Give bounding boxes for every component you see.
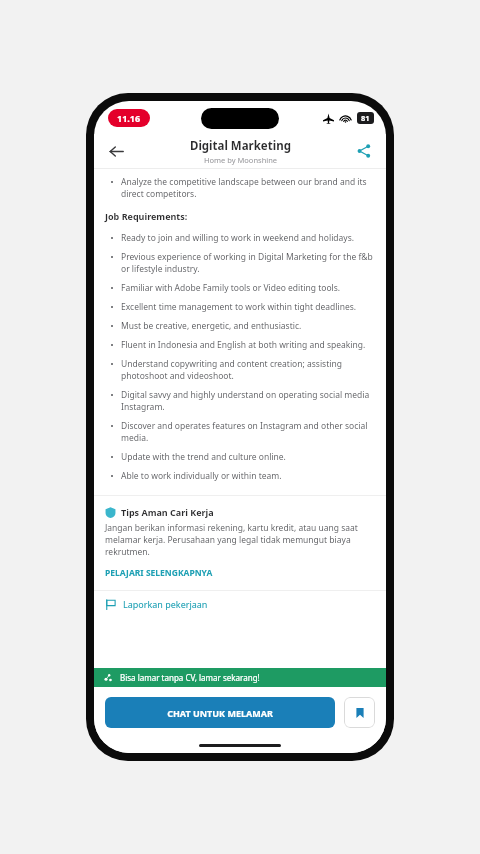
staticText: Familiar with Adobe Family tools or Vide… [121, 282, 341, 294]
staticText: Digital Marketing [190, 138, 291, 154]
staticText: Bisa lamar tanpa CV, lamar sekarang! [120, 672, 260, 683]
staticText: Tips Aman Cari Kerja [121, 506, 214, 518]
staticText: Excellent time management to work within… [121, 301, 357, 313]
staticText: Analyze the competitive landscape betwee… [121, 176, 375, 200]
staticText: Ready to join and willing to work in wee… [121, 232, 355, 244]
staticText: Previous experience of working in Digita… [121, 251, 375, 275]
staticText: Update with the trend and culture online… [121, 451, 286, 463]
button[interactable]: CHAT UNTUK MELAMAR [105, 697, 335, 728]
staticText: CHAT UNTUK MELAMAR [167, 707, 273, 719]
staticText: Jangan berikan informasi rekening, kartu… [105, 522, 375, 558]
staticText: Laporkan pekerjaan [123, 598, 208, 610]
staticText: 11.16 [117, 112, 141, 124]
staticText: Understand copywriting and content creat… [121, 358, 375, 382]
staticText: Digital savvy and highly understand on o… [121, 389, 375, 413]
staticText: Must be creative, energetic, and enthusi… [121, 320, 302, 332]
button[interactable]: Share [351, 138, 377, 164]
button[interactable]: Bisa lamar tanpa CV, lamar sekarang! [94, 668, 386, 687]
staticText: Home by Moonshine [204, 155, 278, 165]
button[interactable]: PELAJARI SELENGKAPNYA [105, 567, 213, 579]
staticText: Able to work individually or within team… [121, 470, 282, 482]
staticText: 81 [361, 113, 370, 123]
staticText: PELAJARI SELENGKAPNYA [105, 567, 213, 579]
staticText: Discover and operates features on Instag… [121, 420, 375, 444]
staticText: Fluent in Indonesia and English at both … [121, 339, 366, 351]
button[interactable]: Save job [344, 697, 375, 728]
staticText: Job Requirements: [105, 210, 188, 222]
button[interactable]: Back [102, 137, 130, 165]
button[interactable]: Laporkan pekerjaan [94, 591, 386, 617]
